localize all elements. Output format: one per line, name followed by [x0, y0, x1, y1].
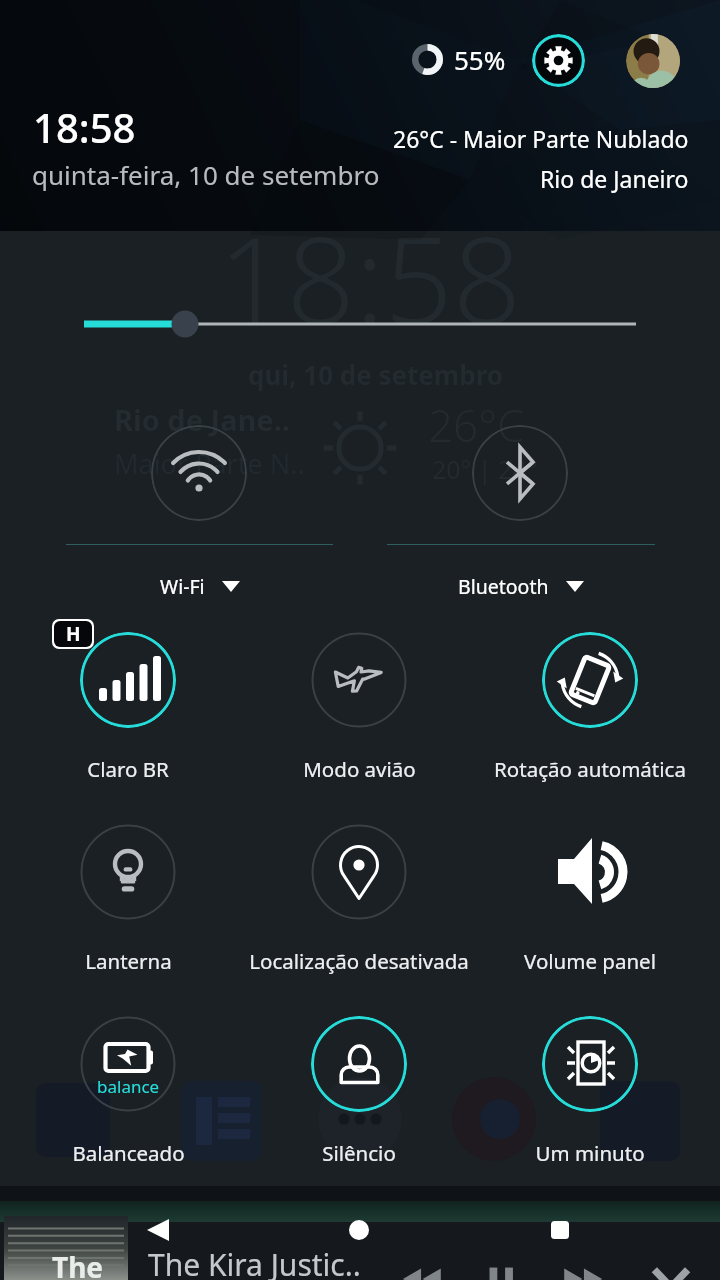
- staticText: Rio de Janeiro: [540, 163, 689, 194]
- button[interactable]: Claro BR: [80, 632, 176, 728]
- button[interactable]: Rotação automática: [542, 632, 638, 728]
- button[interactable]: Home: [331, 1202, 387, 1258]
- staticText: Localização desativada: [249, 947, 469, 975]
- button[interactable]: Modo avião: [311, 632, 407, 728]
- button[interactable]: Recent apps: [532, 1202, 588, 1258]
- button[interactable]: The Kira Justic..: [0, 1222, 720, 1280]
- button[interactable]: Localização desativada: [311, 824, 407, 920]
- button[interactable]: Localização desativada: [219, 943, 499, 979]
- button[interactable]: Bluetooth: [387, 566, 655, 606]
- staticText: Lanterna: [85, 947, 172, 975]
- staticText: The Kira Justic..: [148, 1244, 361, 1280]
- button[interactable]: Wi-Fi: [66, 566, 333, 606]
- button[interactable]: Um minuto: [542, 1016, 638, 1112]
- button[interactable]: 55%: [408, 38, 510, 81]
- button[interactable]: Lanterna: [80, 824, 176, 920]
- staticText: Modo avião: [303, 755, 416, 783]
- button[interactable]: Silêncio: [219, 1135, 499, 1171]
- staticText: Volume panel: [524, 947, 656, 975]
- button[interactable]: Balanceado: [80, 1016, 176, 1112]
- button[interactable]: Brightness: [0, 306, 720, 342]
- staticText: 55%: [454, 42, 506, 77]
- button[interactable]: Back: [130, 1202, 186, 1258]
- button[interactable]: Bluetooth: [472, 425, 568, 521]
- staticText: Balanceado: [72, 1139, 185, 1167]
- staticText: balance: [97, 1075, 160, 1098]
- staticText: Wi-Fi: [160, 573, 205, 600]
- button[interactable]: Claro BR: [0, 751, 268, 787]
- staticText: Rotação automática: [494, 755, 686, 783]
- button[interactable]: Silêncio: [311, 1016, 407, 1112]
- button[interactable]: Balanceado: [0, 1135, 268, 1171]
- button[interactable]: Modo avião: [219, 751, 499, 787]
- button[interactable]: Lanterna: [0, 943, 268, 979]
- staticText: Um minuto: [535, 1139, 645, 1167]
- staticText: 26°C - Maior Parte Nublado: [393, 123, 689, 154]
- button[interactable]: User profile: [626, 34, 680, 88]
- button[interactable]: Rotação automática: [450, 751, 720, 787]
- button[interactable]: Um minuto: [450, 1135, 720, 1171]
- button[interactable]: Wi-Fi: [151, 425, 247, 521]
- staticText: H: [66, 621, 81, 647]
- staticText: 20° | 24°: [432, 452, 538, 486]
- button[interactable]: Settings: [532, 34, 585, 87]
- staticText: Silêncio: [322, 1139, 396, 1167]
- staticText: 26°C: [428, 395, 525, 455]
- staticText: 18:58: [33, 100, 136, 154]
- staticText: 18:58: [218, 196, 522, 359]
- staticText: qui, 10 de setembro: [248, 357, 504, 392]
- staticText: Rio de Jane..: [114, 400, 290, 439]
- staticText: Claro BR: [87, 755, 169, 783]
- staticText: The: [52, 1248, 104, 1280]
- button[interactable]: Volume panel: [450, 943, 720, 979]
- button[interactable]: Volume panel: [542, 824, 638, 920]
- staticText: quinta-feira, 10 de setembro: [32, 157, 380, 192]
- staticText: Maior Parte N..: [114, 445, 305, 482]
- staticText: Bluetooth: [458, 573, 549, 600]
